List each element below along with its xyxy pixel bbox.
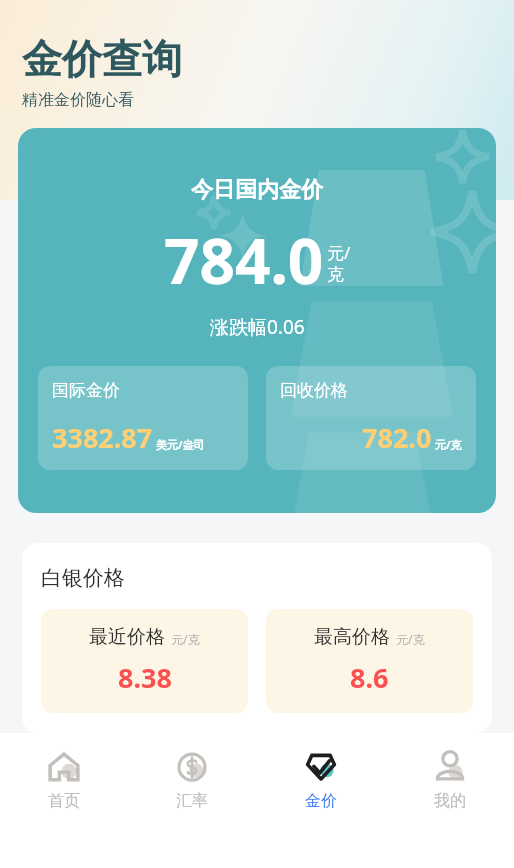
button[interactable]: 汇率 (128, 733, 256, 868)
staticText: 元/ (327, 241, 351, 264)
button[interactable]: 回收价格 (266, 366, 476, 470)
staticText: 首页 (48, 791, 80, 811)
staticText: 最高价格 (314, 625, 390, 649)
staticText: 最近价格 (89, 625, 165, 649)
staticText: 今日国内金价 (191, 176, 323, 204)
staticText: 白银价格 (41, 565, 125, 591)
staticText: 金价查询 (22, 34, 182, 84)
staticText: 元/克 (435, 437, 462, 452)
button[interactable]: 最高价格 (266, 609, 473, 713)
button[interactable]: 首页 (0, 733, 128, 868)
staticText: 我的 (434, 791, 466, 811)
staticText: 金价 (305, 791, 337, 811)
staticText: 美元/盎司 (156, 437, 205, 452)
button[interactable]: 金价 (256, 733, 385, 868)
staticText: 涨跌幅0.06 (210, 314, 305, 340)
staticText: 元/克 (396, 631, 425, 647)
staticText: 8.38 (118, 659, 172, 696)
staticText: 元/克 (171, 631, 200, 647)
staticText: 782.0 (362, 419, 432, 456)
button[interactable]: 我的 (385, 733, 514, 868)
staticText: 784.0 (164, 218, 324, 302)
staticText: 精准金价随心看 (22, 90, 134, 110)
button[interactable]: 国际金价 (38, 366, 248, 470)
staticText: 汇率 (176, 791, 208, 811)
staticText: 3382.87 (52, 419, 153, 456)
staticText: 克 (327, 264, 344, 285)
staticText: 8.6 (350, 659, 389, 696)
button[interactable]: 最近价格 (41, 609, 248, 713)
staticText: 回收价格 (280, 380, 348, 401)
staticText: 国际金价 (52, 380, 120, 401)
button[interactable]: 白银价格 (22, 543, 492, 733)
button[interactable]: 今日国内金价 (18, 128, 496, 513)
